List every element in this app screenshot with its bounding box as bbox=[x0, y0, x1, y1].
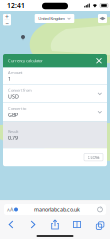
button[interactable]: Close bbox=[94, 54, 104, 67]
button[interactable]: Forward bbox=[22, 218, 44, 231]
button[interactable]: Map style bbox=[98, 14, 107, 23]
button[interactable]: ᴀA bbox=[4, 204, 106, 215]
button[interactable]: CLOSE bbox=[84, 153, 103, 161]
button[interactable]: Bookmarks bbox=[66, 218, 88, 231]
staticText: Convert from bbox=[8, 87, 32, 93]
button[interactable]: Tabs bbox=[88, 218, 110, 231]
staticText: CLOSE bbox=[87, 154, 99, 160]
staticText: GBP bbox=[8, 111, 18, 118]
button[interactable]: Back bbox=[0, 218, 22, 231]
staticText: 12:41 bbox=[7, 1, 25, 10]
button[interactable]: Zoom in bbox=[3, 14, 11, 19]
staticText: Convert to bbox=[8, 106, 26, 111]
staticText: 1 bbox=[8, 75, 11, 82]
staticText: – bbox=[5, 18, 8, 27]
staticText: 0.79 bbox=[8, 134, 18, 141]
staticText: manorlabcab.co.uk bbox=[34, 206, 80, 213]
button[interactable]: Zoom out bbox=[3, 20, 11, 25]
staticText: ᴀA bbox=[7, 206, 13, 213]
staticText: Result bbox=[8, 129, 18, 134]
staticText: Currency calculator bbox=[8, 58, 43, 63]
staticText: Amount bbox=[8, 70, 22, 75]
staticText: + bbox=[5, 12, 9, 21]
staticText: USD bbox=[8, 93, 19, 100]
button[interactable]: Share bbox=[44, 218, 66, 231]
button[interactable]: United Kingdom bbox=[35, 14, 74, 23]
staticText: United Kingdom bbox=[38, 16, 65, 21]
